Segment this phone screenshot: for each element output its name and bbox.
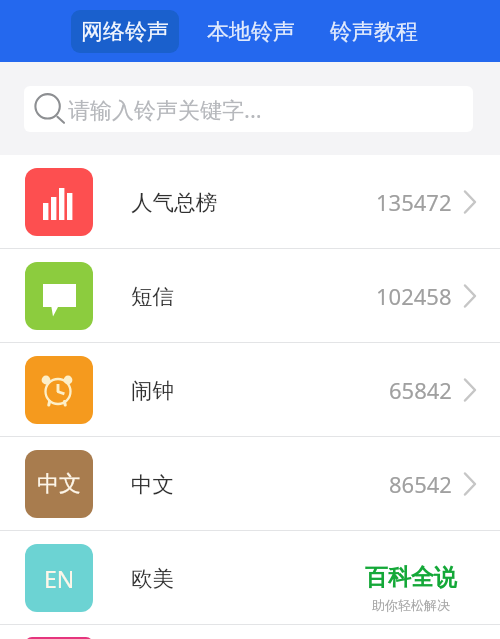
button[interactable]: 人气总榜 <box>0 155 500 248</box>
button[interactable] <box>0 625 500 639</box>
staticText: 人气总榜 <box>131 189 217 216</box>
other: Search <box>34 92 65 124</box>
staticText: 助你轻松解决 <box>372 597 450 613</box>
staticText: 中文 <box>37 470 81 498</box>
button[interactable]: 闹钟 <box>0 343 500 436</box>
staticText: 86542 <box>389 469 452 499</box>
button[interactable]: EN <box>0 531 500 624</box>
button[interactable]: 中文 <box>0 437 500 530</box>
staticText: 135472 <box>376 187 452 217</box>
button[interactable]: 铃声教程 <box>330 10 418 53</box>
button[interactable]: 本地铃声 <box>207 10 295 53</box>
staticText: 102458 <box>376 281 452 311</box>
staticText: 请输入铃声关键字... <box>68 94 262 124</box>
button[interactable]: 短信 <box>0 249 500 342</box>
staticText: 网络铃声 <box>81 18 169 46</box>
staticText: 本地铃声 <box>207 18 295 46</box>
staticText: 欧美 <box>131 565 174 592</box>
staticText: 铃声教程 <box>330 18 418 46</box>
staticText: 百科全说 <box>365 563 457 592</box>
staticText: 中文 <box>131 471 174 498</box>
staticText: 闹钟 <box>131 377 174 404</box>
button[interactable]: Search <box>24 86 473 132</box>
staticText: 短信 <box>131 283 174 310</box>
staticText: 65842 <box>389 375 452 405</box>
staticText: EN <box>44 563 75 594</box>
button[interactable]: 网络铃声 <box>71 10 179 53</box>
